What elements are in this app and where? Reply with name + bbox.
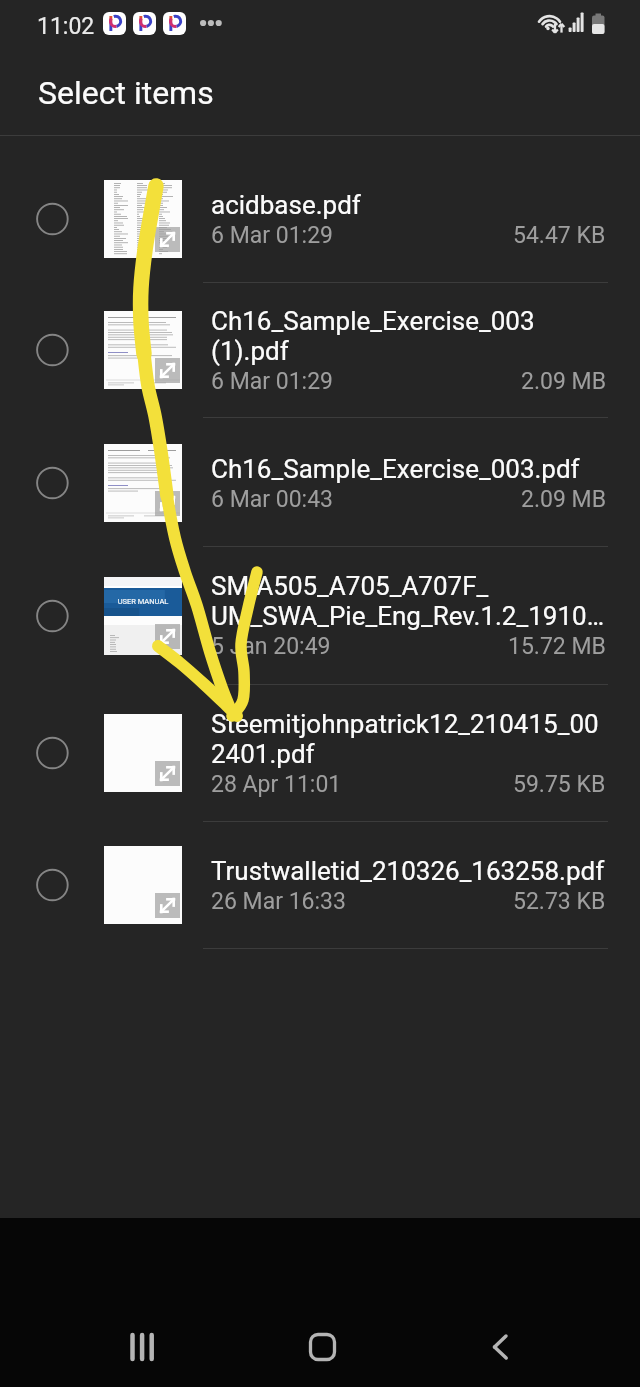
staticText: Trustwalletid_210326_163258.pdf	[211, 856, 605, 886]
staticText: SM-A505_A705_A707F_	[211, 571, 489, 601]
staticText: 2.09 MB	[521, 368, 606, 395]
button[interactable]: Back	[440, 1287, 560, 1387]
button[interactable]: Trustwalletid_210326_163258.pdf	[0, 822, 640, 949]
staticText: Steemitjohnpatrick12_210415_00	[211, 709, 599, 739]
staticText: 2401.pdf	[211, 739, 315, 769]
staticText: 54.47 KB	[513, 222, 606, 249]
button[interactable]: Ch16_Sample_Exercise_003.pdf	[0, 418, 640, 547]
staticText: (1).pdf	[211, 336, 289, 366]
staticText: 2.09 MB	[521, 486, 606, 513]
staticText: 26 Mar 16:33	[211, 888, 346, 915]
staticText: 6 Mar 00:43	[211, 486, 333, 513]
staticText: Ch16_Sample_Exercise_003.pdf	[211, 454, 580, 484]
button[interactable]: Ch16_Sample_Exercise_003	[0, 283, 640, 418]
button[interactable]: Home	[261, 1287, 381, 1387]
staticText: USER MANUAL	[104, 597, 182, 606]
staticText: Select items	[38, 74, 214, 112]
staticText: 6 Mar 01:29	[211, 222, 333, 249]
button[interactable]: Recents	[82, 1287, 202, 1387]
staticText: acidbase.pdf	[211, 190, 361, 220]
staticText: Ch16_Sample_Exercise_003	[211, 306, 535, 336]
staticText: 5 Jan 20:49	[211, 633, 331, 660]
staticText: 28 Apr 11:01	[211, 771, 342, 798]
staticText: 11:02	[37, 13, 95, 40]
staticText: 52.73 KB	[513, 888, 606, 915]
staticText: UM_SWA_Pie_Eng_Rev.1.2_1910…	[211, 601, 605, 631]
button[interactable]: Steemitjohnpatrick12_210415_00	[0, 685, 640, 822]
button[interactable]: USER MANUAL	[0, 547, 640, 685]
staticText: 6 Mar 01:29	[211, 368, 333, 395]
staticText: 59.75 KB	[513, 771, 606, 798]
button[interactable]: acidbase.pdf	[0, 136, 640, 283]
staticText: 15.72 MB	[508, 633, 606, 660]
